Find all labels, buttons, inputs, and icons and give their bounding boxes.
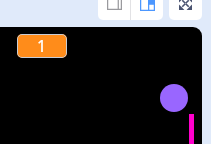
button[interactable]: 1: [17, 34, 67, 58]
button[interactable]: Full screen: [169, 0, 202, 20]
button[interactable]: Small stage: [98, 0, 130, 20]
button[interactable]: Large stage: [131, 0, 163, 20]
staticText: 1: [37, 35, 47, 57]
